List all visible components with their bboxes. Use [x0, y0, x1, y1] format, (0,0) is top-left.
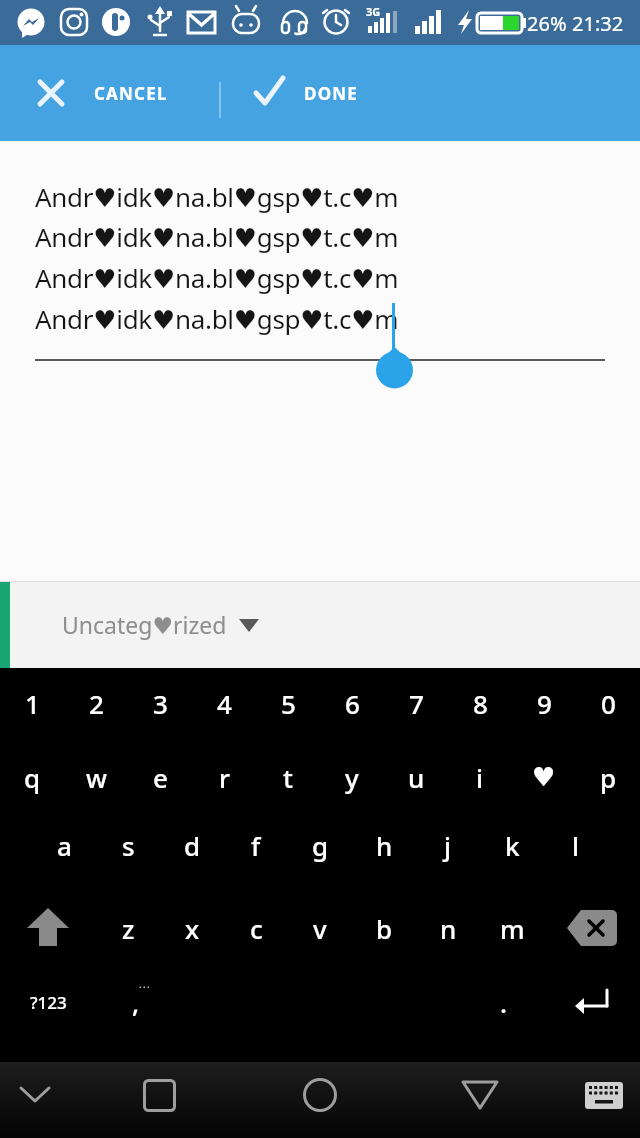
button[interactable]: 5	[256, 668, 320, 738]
button[interactable]: w	[64, 740, 128, 814]
staticText: ?123	[30, 991, 67, 1014]
staticText: a	[57, 828, 72, 863]
button[interactable]	[448, 1057, 512, 1133]
staticText: 6	[345, 686, 360, 721]
button[interactable]: d	[160, 809, 224, 881]
button[interactable]: CANCEL	[38, 45, 168, 141]
button[interactable]: DONE	[252, 45, 359, 141]
staticText: 7	[409, 686, 424, 721]
staticText: e	[153, 760, 168, 795]
staticText: q	[24, 760, 41, 795]
button[interactable]: 2	[64, 668, 128, 738]
button[interactable]: 4	[192, 668, 256, 738]
button[interactable]: v	[288, 890, 352, 966]
staticText: ⋯	[138, 980, 150, 994]
staticText: h	[376, 828, 393, 863]
staticText: Uncateg♥rized	[62, 609, 227, 640]
staticText: c	[250, 911, 263, 946]
button[interactable]: a	[32, 809, 96, 881]
button[interactable]: 9	[512, 668, 576, 738]
button[interactable]: m	[480, 890, 544, 966]
button[interactable]: 7	[384, 668, 448, 738]
button[interactable]: s	[96, 809, 160, 881]
staticText: w	[86, 760, 107, 795]
button[interactable]: f	[224, 809, 288, 881]
staticText: j	[444, 828, 452, 863]
staticText: u	[408, 760, 425, 795]
staticText: g	[312, 828, 329, 863]
button[interactable]: .	[464, 966, 544, 1038]
button[interactable]: 8	[448, 668, 512, 738]
button[interactable]: k	[480, 809, 544, 881]
staticText: 2	[89, 686, 104, 721]
staticText: 3	[153, 686, 168, 721]
staticText: ,	[132, 985, 140, 1020]
staticText: r	[219, 760, 230, 795]
button[interactable]: Uncateg♥rized	[0, 581, 640, 668]
button[interactable]: e	[128, 740, 192, 814]
button[interactable]: u	[384, 740, 448, 814]
staticText: 21:32	[572, 10, 624, 37]
button[interactable]: t	[256, 740, 320, 814]
button[interactable]	[288, 1057, 352, 1133]
button[interactable]: p	[576, 740, 640, 814]
button[interactable]: y	[320, 740, 384, 814]
button[interactable]	[127, 1057, 191, 1133]
staticText: m	[500, 911, 525, 946]
button[interactable]: 6	[320, 668, 384, 738]
staticText: y	[345, 760, 359, 795]
button[interactable]: ?123	[0, 966, 96, 1038]
staticText: n	[440, 911, 457, 946]
button[interactable]: 0	[576, 668, 640, 738]
button[interactable]: ♥	[512, 740, 576, 814]
button[interactable]: b	[352, 890, 416, 966]
staticText: l	[572, 828, 580, 863]
staticText: 4	[217, 686, 232, 721]
staticText: d	[184, 828, 201, 863]
staticText: t	[283, 760, 293, 795]
staticText: v	[313, 911, 327, 946]
staticText: 1	[25, 686, 40, 721]
button[interactable]: ,	[96, 966, 176, 1038]
staticText: 3G	[366, 4, 381, 19]
button[interactable]: l	[544, 809, 608, 881]
button[interactable]: n	[416, 890, 480, 966]
button[interactable]	[3, 1057, 67, 1133]
staticText: DONE	[304, 82, 359, 105]
staticText: 8	[473, 686, 488, 721]
staticText: 26%	[527, 10, 567, 37]
button[interactable]: z	[96, 890, 160, 966]
button[interactable]: 3	[128, 668, 192, 738]
button[interactable]: q	[0, 740, 64, 814]
staticText: p	[600, 760, 617, 795]
staticText: b	[376, 911, 393, 946]
staticText: 5	[281, 686, 296, 721]
button[interactable]	[544, 890, 640, 966]
button[interactable]: r	[192, 740, 256, 814]
button[interactable]	[544, 966, 640, 1038]
staticText: i	[476, 760, 484, 795]
button[interactable]	[0, 890, 96, 966]
button[interactable]: i	[448, 740, 512, 814]
staticText: Andr♥idk♥na.bl♥gsp♥t.c♥m Andr♥idk♥na.bl♥…	[35, 179, 399, 337]
button[interactable]: 1	[0, 668, 64, 738]
button[interactable]	[572, 1057, 636, 1133]
staticText: CANCEL	[94, 82, 168, 105]
staticText: ♥	[532, 762, 556, 792]
staticText: z	[122, 911, 135, 946]
staticText: x	[185, 911, 200, 946]
button[interactable]: x	[160, 890, 224, 966]
staticText: k	[505, 828, 520, 863]
button[interactable]: j	[416, 809, 480, 881]
staticText: 0	[601, 686, 616, 721]
staticText: .	[500, 985, 508, 1020]
button[interactable]: c	[224, 890, 288, 966]
staticText: s	[122, 828, 135, 863]
button[interactable]: h	[352, 809, 416, 881]
staticText: f	[251, 828, 261, 863]
button[interactable]: g	[288, 809, 352, 881]
staticText: 9	[537, 686, 552, 721]
